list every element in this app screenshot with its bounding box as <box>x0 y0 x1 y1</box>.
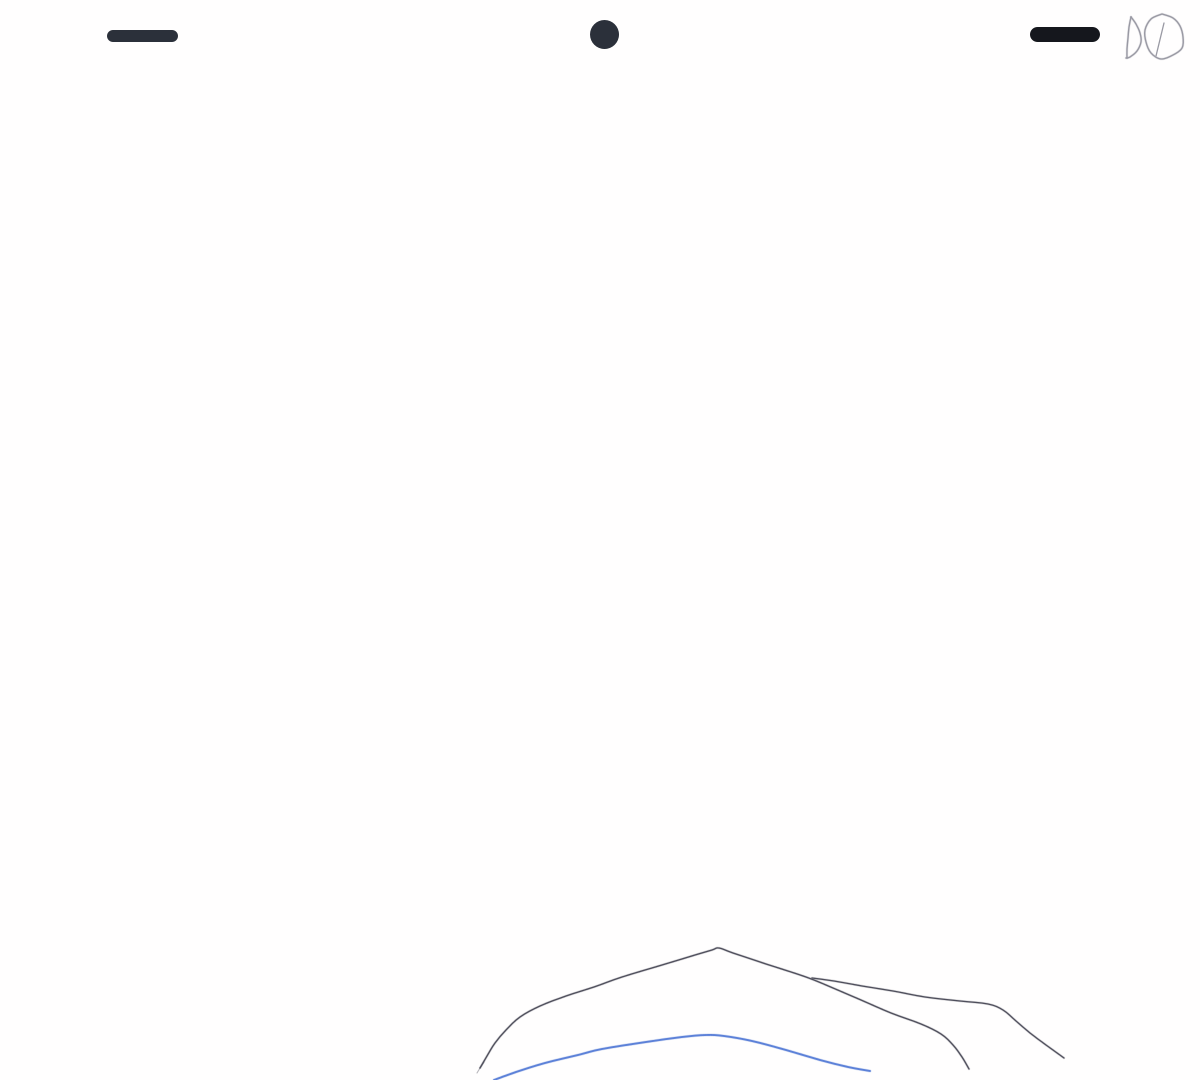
button[interactable]: Battery <box>1030 27 1100 42</box>
button[interactable]: Time <box>107 30 178 42</box>
